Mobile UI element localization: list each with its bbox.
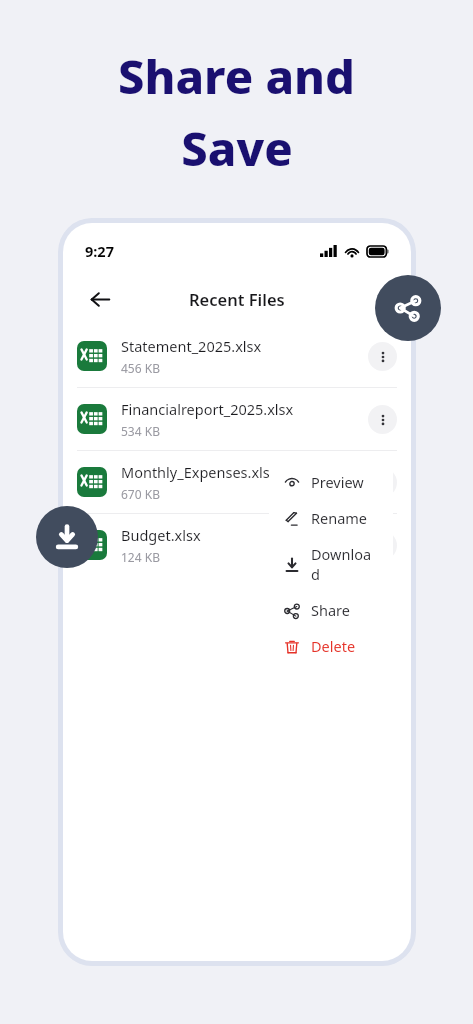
- button[interactable]: Back: [85, 284, 115, 314]
- button[interactable]: Share: [375, 275, 441, 341]
- button[interactable]: Download: [36, 506, 98, 568]
- button[interactable]: More options: [368, 468, 397, 497]
- staticText: Delete: [311, 636, 356, 656]
- staticText: 124 KB: [121, 549, 160, 565]
- button[interactable]: More options: [368, 342, 397, 371]
- staticText: Rename: [311, 508, 368, 528]
- staticText: 9:27: [85, 241, 114, 261]
- button[interactable]: More options: [368, 405, 397, 434]
- button[interactable]: More options: [368, 531, 397, 560]
- staticText: Recent Files: [189, 288, 285, 310]
- staticText: Monthly_Expenses.xlsx: [121, 462, 278, 482]
- staticText: Financialreport_2025.xlsx: [121, 399, 294, 419]
- button[interactable]: Budget.xlsx: [63, 514, 411, 576]
- staticText: Preview: [311, 472, 364, 492]
- button[interactable]: Delete: [269, 628, 393, 664]
- staticText: Statement_2025.xlsx: [121, 336, 262, 356]
- staticText: Download: [311, 544, 379, 584]
- staticText: 670 KB: [121, 486, 160, 502]
- button[interactable]: Download: [269, 536, 393, 592]
- staticText: Share: [311, 600, 350, 620]
- staticText: 456 KB: [121, 360, 160, 376]
- button[interactable]: Preview: [269, 464, 393, 500]
- button[interactable]: Share: [269, 592, 393, 628]
- staticText: Save: [181, 116, 293, 180]
- button[interactable]: Statement_2025.xlsx: [63, 325, 411, 387]
- staticText: 534 KB: [121, 423, 160, 439]
- button[interactable]: Monthly_Expenses.xlsx: [63, 451, 411, 513]
- button[interactable]: Financialreport_2025.xlsx: [63, 388, 411, 450]
- staticText: Share and: [118, 44, 355, 108]
- staticText: Budget.xlsx: [121, 525, 201, 545]
- button[interactable]: Rename: [269, 500, 393, 536]
